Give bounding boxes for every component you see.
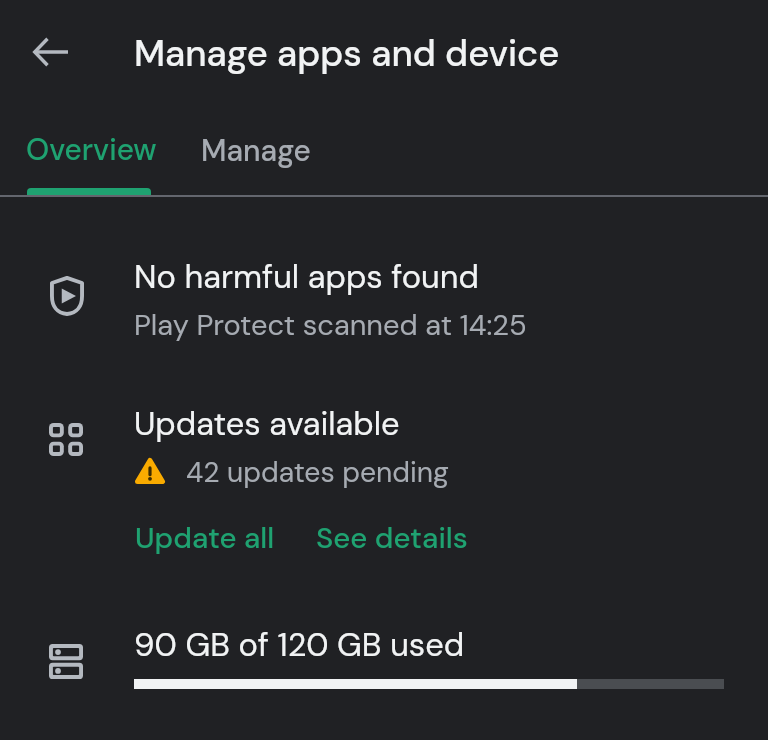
staticText: Manage xyxy=(201,131,311,170)
staticText: 90 GB of 120 GB used xyxy=(134,624,465,666)
staticText: No harmful apps found xyxy=(134,256,479,298)
button[interactable]: See details xyxy=(303,511,481,565)
button[interactable]: Manage xyxy=(178,112,358,196)
staticText: 42 updates pending xyxy=(186,454,449,491)
button[interactable]: Updates available xyxy=(0,390,768,495)
staticText: Play Protect scanned at 14:25 xyxy=(134,306,527,344)
staticText: See details xyxy=(316,519,468,557)
staticText: Updates available xyxy=(134,403,400,445)
button[interactable]: Navigate up xyxy=(26,28,74,76)
staticText: Update all xyxy=(135,519,275,557)
staticText: Overview xyxy=(26,130,157,169)
staticText: Manage apps and device xyxy=(134,30,560,77)
button[interactable]: 90 GB of 120 GB used xyxy=(0,605,768,715)
button[interactable]: No harmful apps found xyxy=(0,240,768,350)
button[interactable]: Overview xyxy=(0,112,178,196)
button[interactable]: Update all xyxy=(122,511,288,565)
